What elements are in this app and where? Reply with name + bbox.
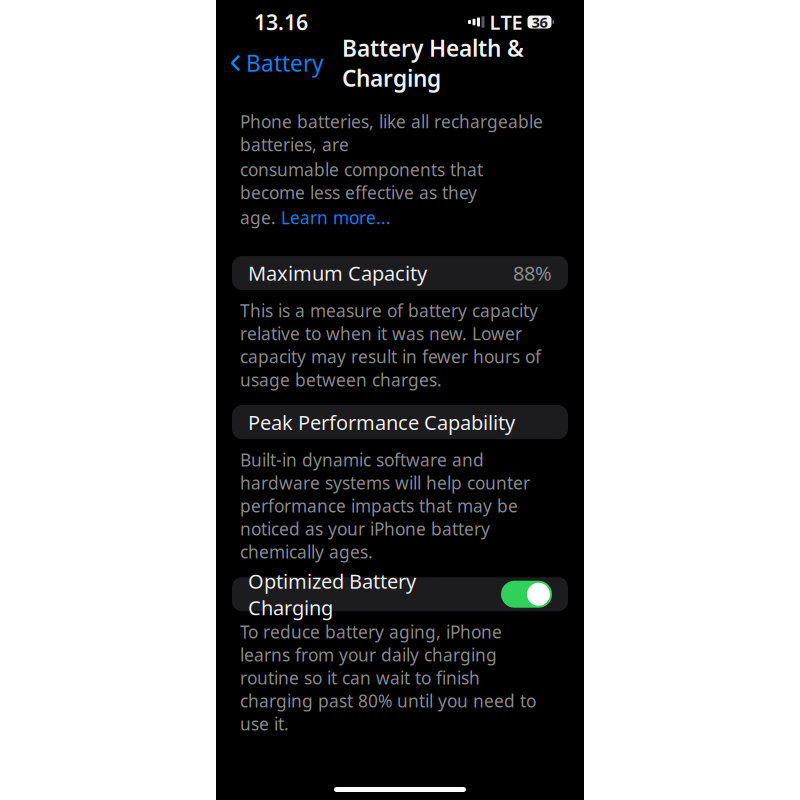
button[interactable]: Learn more... <box>281 206 391 229</box>
staticText: This is a measure of battery capacity re… <box>240 299 541 391</box>
staticText: Maximum Capacity <box>248 260 427 286</box>
staticText: consumable components that become less e… <box>240 158 483 204</box>
staticText: 36 <box>531 12 547 32</box>
button[interactable]: Peak Performance Capability <box>216 405 584 439</box>
staticText: Phone batteries, like all rechargeable b… <box>240 110 543 156</box>
button[interactable]: Optimized Battery Charging <box>216 577 584 611</box>
staticText: 13.16 <box>254 8 308 36</box>
staticText: Built-in dynamic software and hardware s… <box>240 448 530 563</box>
staticText: Learn more... <box>281 206 391 229</box>
staticText: Battery Health & Charging <box>342 33 524 93</box>
staticText: Optimized Battery Charging <box>248 568 416 621</box>
staticText: age. <box>240 206 281 229</box>
staticText: Battery <box>246 48 324 78</box>
staticText: To reduce battery aging, iPhone learns f… <box>240 620 536 735</box>
staticText: 88% <box>513 260 552 286</box>
staticText: Peak Performance Capability <box>248 409 515 435</box>
button[interactable]: Battery <box>230 40 330 86</box>
staticText: LTE <box>489 9 522 35</box>
